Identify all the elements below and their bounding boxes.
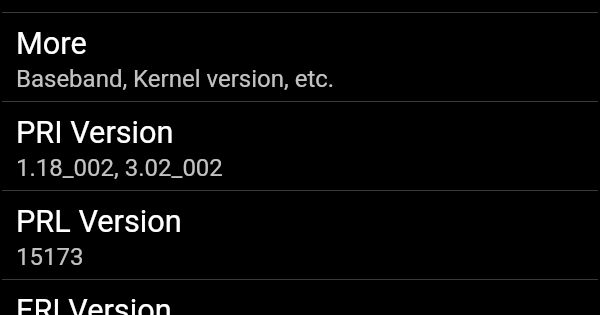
staticText: ERI Version (16, 293, 172, 315)
button[interactable]: ERI Version (0, 280, 600, 315)
staticText: Baseband, Kernel version, etc. (16, 65, 335, 93)
button[interactable]: More (0, 13, 600, 101)
staticText: PRI Version (16, 115, 174, 151)
staticText: 1.18_002, 3.02_002 (16, 154, 223, 182)
staticText: 15173 (16, 243, 84, 271)
button[interactable]: PRI Version (0, 102, 600, 190)
staticText: PRL Version (16, 204, 182, 240)
staticText: More (16, 26, 87, 62)
button[interactable]: PRL Version (0, 191, 600, 279)
